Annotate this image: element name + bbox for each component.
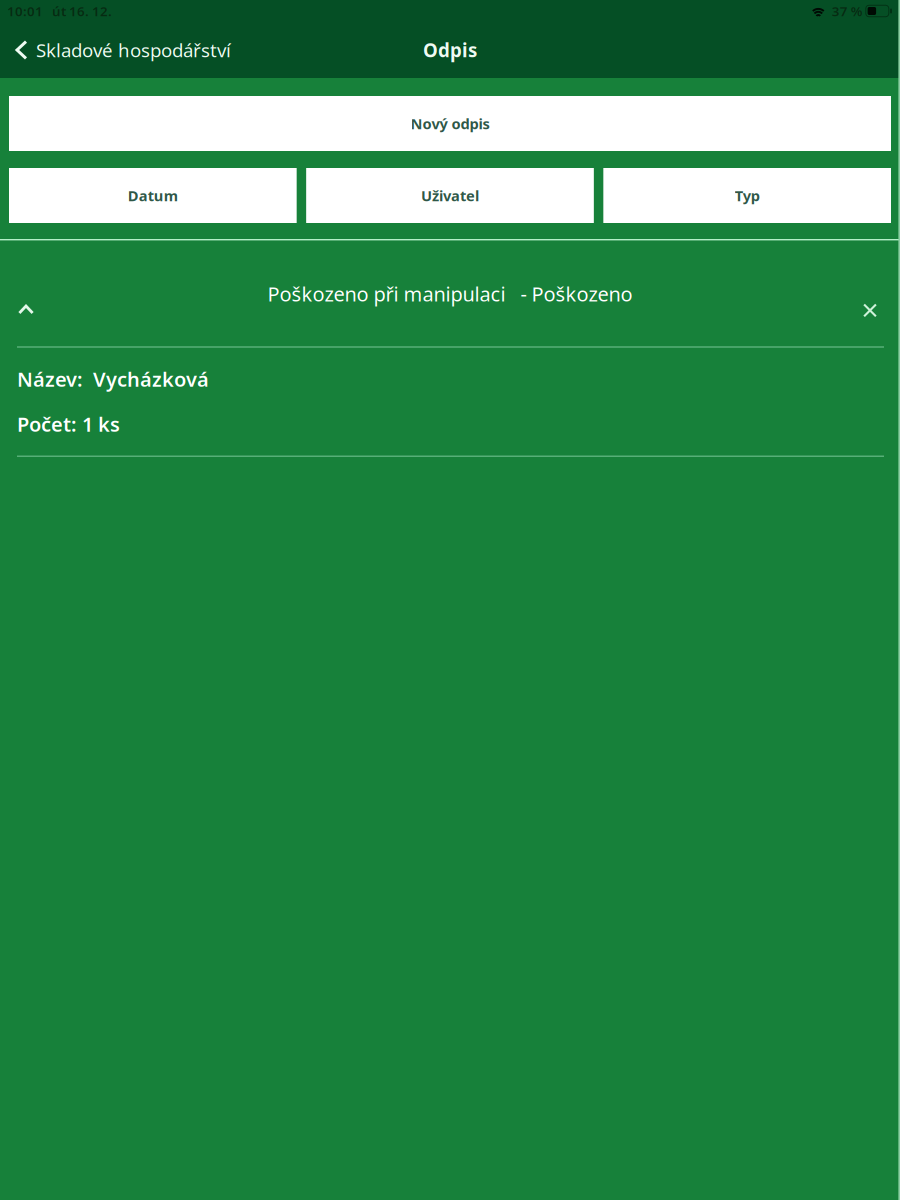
staticText: Uživatel (421, 186, 479, 205)
button[interactable]: Nový odpis (9, 96, 891, 151)
staticText: Poškozeno při manipulaci - Poškozeno (267, 280, 632, 307)
button[interactable]: Skladové hospodářství (0, 22, 243, 78)
staticText: Skladové hospodářství (36, 38, 231, 62)
button[interactable]: Zavřít (839, 239, 900, 347)
staticText: Datum (128, 186, 178, 205)
button[interactable]: Datum (9, 168, 297, 223)
staticText: Typ (735, 186, 760, 205)
staticText: Nový odpis (410, 114, 489, 133)
staticText: Název: Vycházková (17, 366, 209, 392)
staticText: 37 % (832, 2, 863, 20)
button[interactable]: Uživatel (306, 168, 594, 223)
button[interactable]: Typ (603, 168, 891, 223)
staticText: Odpis (423, 38, 477, 62)
staticText: Počet: 1 ks (17, 411, 120, 437)
staticText: út 16. 12. (52, 2, 112, 20)
staticText: 10:01 (7, 2, 43, 20)
button[interactable]: Sbalit (0, 240, 58, 346)
